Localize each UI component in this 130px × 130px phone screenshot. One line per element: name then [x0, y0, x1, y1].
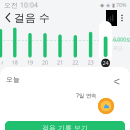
staticText: 17: [0, 59, 3, 66]
staticText: ◆ ◈ ▮ 70%: [100, 1, 126, 9]
staticText: 목표: [113, 45, 123, 52]
staticText: 7일 연속: [76, 92, 96, 99]
staticText: 걸음 수: [14, 11, 50, 24]
staticText: 걸음 기록 보기: [42, 124, 88, 130]
staticText: 24: [103, 59, 109, 67]
staticText: 23: [88, 59, 94, 66]
button[interactable]: More options: [117, 10, 127, 26]
staticText: 오전 10:04: [4, 1, 38, 9]
staticText: 19: [27, 59, 33, 66]
staticText: 6,000보: [113, 36, 130, 43]
button[interactable]: Share: [111, 76, 123, 87]
staticText: 18: [12, 59, 18, 66]
button[interactable]: Charts: [106, 10, 117, 26]
button[interactable]: 걸음 기록 보기: [5, 121, 125, 130]
staticText: 20: [42, 59, 48, 66]
staticText: 21: [57, 59, 63, 66]
staticText: 오늘: [6, 75, 20, 84]
staticText: 22: [72, 59, 78, 66]
button[interactable]: Back: [3, 10, 14, 26]
